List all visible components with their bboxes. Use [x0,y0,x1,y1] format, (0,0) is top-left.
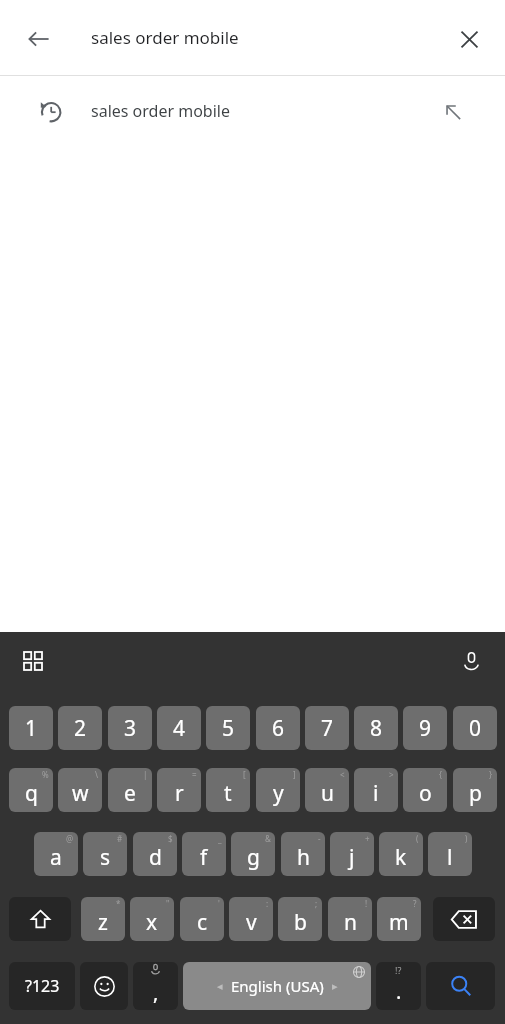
button[interactable]: Voice input [452,642,490,680]
staticText: 3 [124,714,137,743]
button[interactable]: - [281,832,325,876]
button[interactable]: 6 [256,706,300,750]
staticText: x [146,908,158,937]
button[interactable]: , [133,962,178,1010]
staticText: + [365,833,370,844]
button[interactable]: < [305,768,349,812]
staticText: u [321,779,334,808]
staticText: i [373,779,379,808]
staticText: k [395,843,407,872]
button[interactable]: > [354,768,398,812]
button[interactable]: ? [377,897,421,941]
staticText: ? [413,898,417,909]
button[interactable]: ) [428,832,472,876]
staticText: ] [293,769,296,780]
staticText: % [42,769,49,780]
staticText: | [143,769,148,780]
button[interactable]: 8 [354,706,398,750]
button[interactable]: & [231,832,275,876]
button[interactable]: 7 [305,706,349,750]
staticText: ▸ [332,980,338,993]
staticText: ) [465,833,468,844]
staticText: 6 [272,714,285,743]
staticText: 8 [370,714,383,743]
staticText: 2 [74,714,87,743]
button[interactable]: # [83,832,127,876]
staticText: h [297,843,310,872]
staticText: w [72,779,89,808]
button[interactable]: ! [328,897,372,941]
staticText: c [197,908,208,937]
button[interactable]: Emoji [80,962,128,1010]
staticText: > [389,769,394,780]
staticText: = [192,769,197,780]
staticText: j [349,843,355,872]
staticText: - [318,833,321,844]
staticText: 1 [25,714,38,743]
staticText: b [294,908,307,937]
button[interactable]: = [157,768,201,812]
staticText: p [469,779,482,808]
staticText: d [149,843,162,872]
staticText: g [247,843,260,872]
button[interactable]: \ [58,768,102,812]
button[interactable]: } [453,768,497,812]
button[interactable]: * [81,897,125,941]
staticText: l [447,843,453,872]
button[interactable]: ?123 [9,962,75,1010]
staticText: \ [95,769,98,780]
button[interactable]: | [108,768,152,812]
button[interactable]: 1 [9,706,53,750]
button[interactable]: 4 [157,706,201,750]
staticText: q [25,779,38,808]
staticText: 9 [419,714,432,743]
button[interactable]: sales order mobile [0,76,505,147]
button[interactable]: Shift [9,897,71,941]
staticText: { [439,769,443,780]
button[interactable]: ( [379,832,423,876]
button[interactable]: ◂ [183,962,371,1010]
staticText: ( [416,833,419,844]
staticText: English (USA) [231,976,324,996]
button[interactable]: ' [180,897,224,941]
button[interactable]: 0 [453,706,497,750]
staticText: 4 [173,714,186,743]
button[interactable]: 2 [58,706,102,750]
staticText: e [124,779,136,808]
staticText: sales order mobile [91,100,230,122]
button[interactable]: $ [133,832,177,876]
button[interactable]: " [130,897,174,941]
staticText: [ [243,769,246,780]
button[interactable]: ; [278,897,322,941]
staticText: o [419,779,432,808]
staticText: & [265,833,271,844]
button[interactable]: % [9,768,53,812]
button[interactable]: : [229,897,273,941]
staticText: : [266,898,269,909]
button[interactable]: [ [206,768,250,812]
staticText: " [166,898,170,909]
staticText: ' [218,898,220,909]
button[interactable]: + [330,832,374,876]
staticText: !? [395,964,402,976]
staticText: @ [66,833,74,844]
staticText: } [489,769,493,780]
button[interactable]: { [403,768,447,812]
button[interactable]: 5 [206,706,250,750]
button[interactable]: Back [14,14,64,64]
button[interactable]: !? [376,962,421,1010]
staticText: ; [315,898,318,909]
button[interactable]: Clear [444,14,494,64]
button[interactable]: ] [256,768,300,812]
button[interactable]: Insert suggestion [432,91,474,133]
button[interactable]: Search [426,962,495,1010]
button[interactable]: Toolbar [14,642,52,680]
button[interactable]: @ [34,832,78,876]
button[interactable]: Backspace [433,897,495,941]
button[interactable]: 3 [108,706,152,750]
button[interactable]: 9 [403,706,447,750]
button[interactable]: _ [182,832,226,876]
staticText: f [200,843,208,872]
staticText: ◂ [217,980,223,993]
staticText: , [153,979,159,1006]
